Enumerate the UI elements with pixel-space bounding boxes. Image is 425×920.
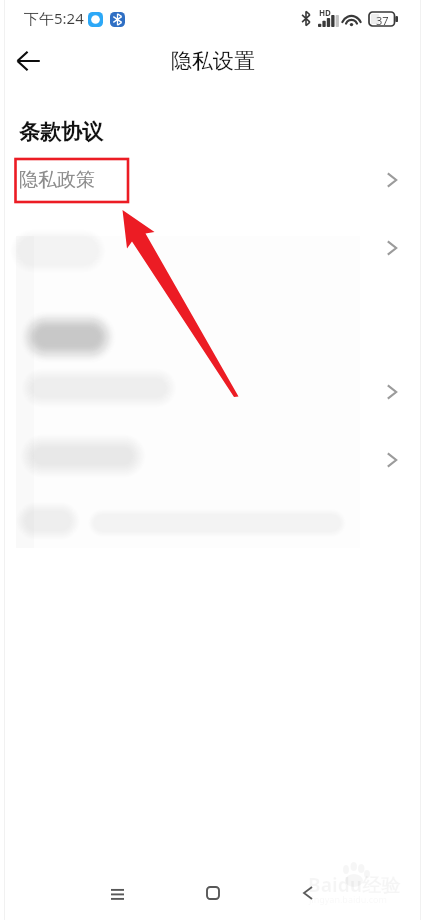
- staticText: 条款协议: [19, 119, 103, 145]
- staticText: jingyan.baidu.com: [309, 893, 387, 905]
- button[interactable]: Back: [286, 871, 330, 915]
- staticText: 下午5:24: [24, 8, 84, 28]
- staticText: Baidu经验: [308, 872, 401, 898]
- button[interactable]: Recent apps: [95, 871, 139, 915]
- staticText: 37: [376, 13, 389, 28]
- button[interactable]: Back: [6, 39, 50, 83]
- staticText: 隐私政策: [19, 168, 95, 192]
- staticText: 隐私设置: [171, 48, 255, 74]
- staticText: HD: [319, 7, 331, 18]
- button[interactable]: 隐私政策: [0, 155, 425, 207]
- button[interactable]: Home: [191, 871, 235, 915]
